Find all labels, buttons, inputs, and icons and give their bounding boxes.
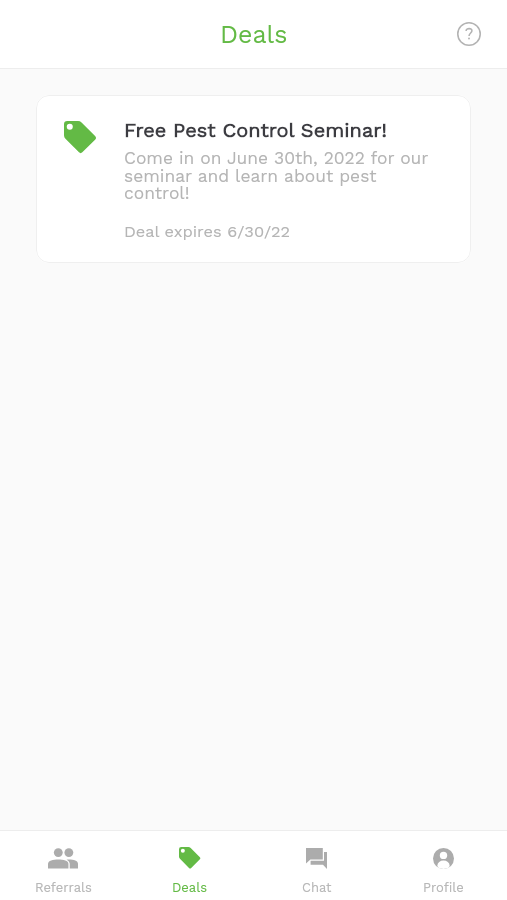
- button[interactable]: Referrals: [0, 831, 126, 900]
- staticText: Deals: [220, 20, 288, 49]
- staticText: Profile: [423, 880, 464, 895]
- staticText: Free Pest Control Seminar!: [124, 118, 387, 141]
- button[interactable]: Deals: [126, 831, 253, 900]
- button[interactable]: Profile: [380, 831, 507, 900]
- button[interactable]: Free Pest Control Seminar!: [36, 95, 471, 263]
- button[interactable]: Chat: [253, 831, 380, 900]
- staticText: Chat: [302, 880, 332, 895]
- staticText: Deal expires 6/30/22: [124, 222, 291, 241]
- staticText: Come in on June 30th, 2022 for our semin…: [124, 148, 429, 203]
- button[interactable]: Help: [447, 12, 491, 56]
- staticText: Referrals: [35, 880, 92, 895]
- staticText: Deals: [172, 880, 208, 895]
